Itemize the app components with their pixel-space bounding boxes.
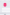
button[interactable]: Home	[0, 12, 2, 14]
button[interactable]: Library	[6, 12, 8, 14]
button[interactable]: Search	[8, 12, 10, 14]
button[interactable]: Browse	[2, 12, 4, 14]
button[interactable]: Radio	[4, 12, 6, 14]
